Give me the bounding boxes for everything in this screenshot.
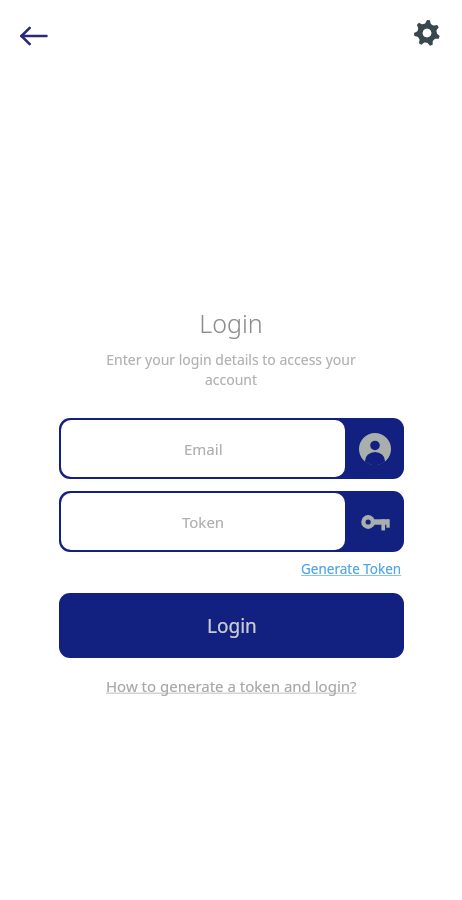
button[interactable]: Email xyxy=(59,418,404,479)
staticText: Generate Token xyxy=(301,560,402,578)
staticText: Token xyxy=(182,512,225,532)
button[interactable]: Generate Token xyxy=(299,558,404,580)
button[interactable]: Settings xyxy=(404,10,450,56)
staticText: How to generate a token and login? xyxy=(106,676,357,696)
staticText: Login xyxy=(199,306,263,340)
button[interactable]: Login xyxy=(59,593,404,658)
staticText: Email xyxy=(184,439,223,459)
button[interactable]: Token xyxy=(59,491,404,552)
staticText: Login xyxy=(207,613,257,639)
staticText: Enter your login details to access your … xyxy=(81,350,381,390)
button[interactable]: How to generate a token and login? xyxy=(102,673,361,699)
button[interactable]: Back xyxy=(10,12,58,60)
